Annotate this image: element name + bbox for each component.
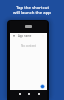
staticText: No content	[21, 44, 37, 48]
button[interactable]: Recents	[36, 92, 41, 95]
button[interactable]: Home	[26, 92, 31, 95]
button[interactable]: Menu	[12, 34, 16, 38]
staticText: will launch the app	[13, 9, 51, 15]
button[interactable]: Back	[17, 92, 22, 95]
staticText: Tap the shortcut	[16, 4, 49, 10]
staticText: App name	[18, 34, 32, 38]
button[interactable]: Shortcut	[25, 25, 32, 28]
button[interactable]: Add shortcut	[40, 84, 45, 89]
